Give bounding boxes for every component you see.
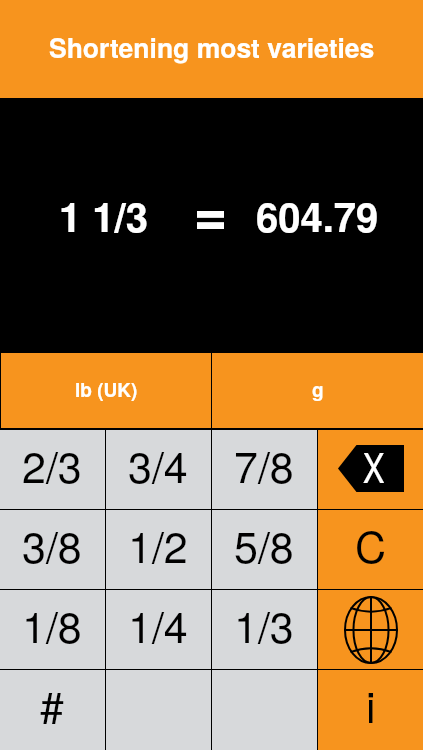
staticText: 604.79 [256, 187, 379, 244]
other: Backspace [338, 445, 404, 492]
button[interactable]: 3/4 [106, 430, 211, 509]
button[interactable]: 1/2 [106, 510, 211, 589]
button[interactable]: 1/3 [212, 590, 317, 669]
staticText: 1/4 [128, 594, 188, 656]
button[interactable]: i [318, 670, 423, 750]
button[interactable]: Change units [318, 590, 423, 669]
staticText: 1/2 [128, 514, 188, 576]
staticText: g [312, 376, 324, 403]
button[interactable]: lb (UK) [1, 353, 211, 428]
button[interactable]: 5/8 [212, 510, 317, 589]
other: Change units [344, 596, 398, 664]
staticText: # [40, 674, 64, 736]
staticText: Shortening most varieties [49, 28, 375, 66]
staticText: 7/8 [234, 434, 294, 496]
staticText: 1/8 [22, 594, 82, 656]
staticText: X [363, 436, 385, 483]
button[interactable]: 2/3 [0, 430, 105, 509]
staticText: i [366, 674, 376, 736]
button[interactable]: 1/8 [0, 590, 105, 669]
staticText: 3/4 [128, 434, 188, 496]
staticText: 1/3 [234, 594, 294, 656]
staticText: C [355, 514, 387, 576]
button[interactable]: g [212, 353, 423, 428]
staticText: 2/3 [22, 434, 82, 496]
button[interactable]: 7/8 [212, 430, 317, 509]
staticText: 5/8 [234, 514, 294, 576]
button[interactable]: 3/8 [0, 510, 105, 589]
staticText: lb (UK) [75, 376, 138, 403]
button[interactable]: 1/4 [106, 590, 211, 669]
staticText: 1 1/3 [59, 187, 148, 244]
button[interactable]: C [318, 510, 423, 589]
button[interactable]: Backspace [318, 430, 423, 509]
button[interactable]: Shortening most varieties [0, 0, 423, 98]
button[interactable]: # [0, 670, 105, 750]
staticText: 3/8 [22, 514, 82, 576]
